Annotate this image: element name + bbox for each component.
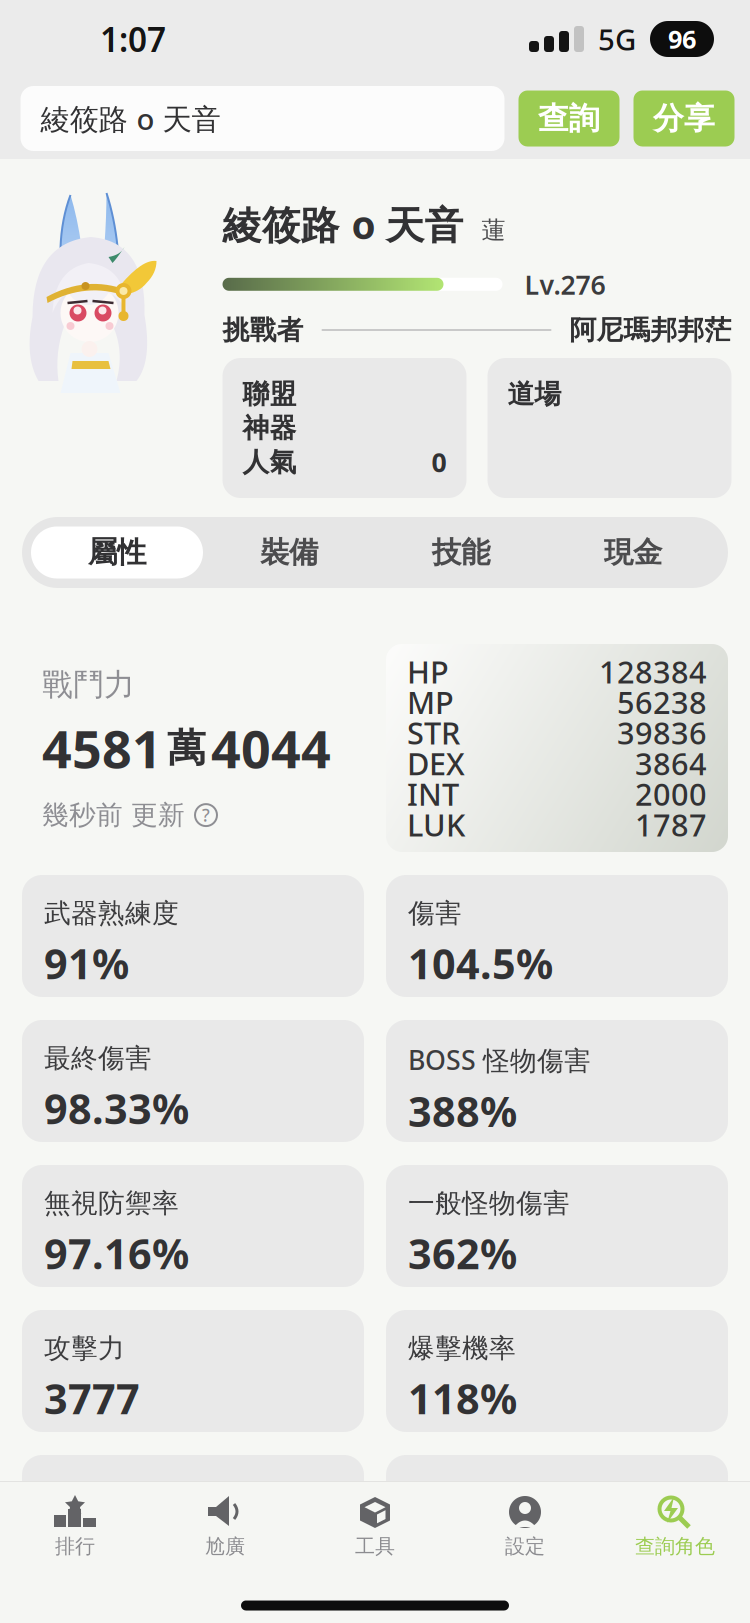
staticText: 裝備 — [260, 534, 318, 570]
staticText: 綾筱路 o 天音 — [222, 199, 463, 250]
staticText: 4581 — [42, 714, 162, 783]
button[interactable]: 屬性 — [31, 526, 203, 578]
staticText: 39836 — [617, 712, 707, 753]
staticText: 現金 — [604, 534, 662, 570]
button[interactable]: 排行 — [0, 1482, 150, 1588]
staticText: BOSS 怪物傷害 — [408, 1042, 591, 1078]
staticText: 388% — [408, 1084, 517, 1138]
button[interactable]: 綾筱路 o 天音 — [20, 86, 504, 151]
staticText: Lv.276 — [524, 267, 605, 302]
staticText: 挑戰者 — [222, 314, 303, 346]
staticText: 人氣 — [242, 446, 296, 478]
staticText: STR — [407, 712, 460, 753]
staticText: 5G — [598, 19, 636, 58]
staticText: 阿尼瑪邦邦茫 — [569, 314, 731, 346]
staticText: 設定 — [505, 1534, 545, 1559]
button[interactable]: 技能 — [375, 526, 547, 578]
button[interactable]: 現金 — [547, 526, 719, 578]
staticText: 武器熟練度 — [44, 897, 179, 930]
button[interactable]: 工具 — [300, 1482, 450, 1588]
staticText: 128384 — [599, 651, 707, 692]
staticText: INT — [407, 773, 459, 814]
staticText: 綾筱路 o 天音 — [40, 99, 220, 138]
button[interactable]: 設定 — [450, 1482, 600, 1588]
staticText: 道場 — [507, 378, 561, 410]
staticText: 蓮 — [481, 215, 505, 245]
staticText: 查詢角色 — [635, 1534, 715, 1559]
button[interactable]: 分享 — [633, 90, 734, 146]
staticText: 97.16% — [44, 1226, 189, 1281]
staticText: 無視防禦率 — [44, 1187, 179, 1220]
staticText: DEX — [407, 743, 465, 784]
staticText: 104.5% — [408, 936, 553, 991]
staticText: 96 — [668, 22, 696, 56]
staticText: 2000 — [635, 773, 707, 814]
staticText: 尬廣 — [205, 1534, 245, 1559]
staticText: 技能 — [432, 534, 490, 570]
staticText: 傷害 — [408, 897, 462, 930]
staticText: ? — [202, 804, 210, 827]
staticText: 查詢 — [538, 100, 600, 137]
staticText: 1:07 — [100, 17, 166, 61]
staticText: 最終傷害 — [44, 1042, 152, 1075]
staticText: LUK — [407, 804, 465, 845]
staticText: 91% — [44, 936, 129, 991]
staticText: 幾秒前 更新 — [42, 799, 185, 831]
staticText: 神器 — [242, 412, 296, 444]
staticText: 戰鬥力 — [42, 666, 135, 704]
staticText: 362% — [408, 1226, 517, 1281]
staticText: 3864 — [635, 743, 707, 784]
staticText: 聯盟 — [242, 378, 296, 410]
staticText: 0 — [431, 444, 446, 480]
staticText: 1787 — [635, 804, 707, 845]
staticText: 56238 — [617, 682, 707, 722]
staticText: HP — [407, 651, 449, 692]
staticText: 分享 — [653, 100, 715, 137]
staticText: 攻擊力 — [44, 1332, 125, 1365]
staticText: 4044 — [211, 714, 331, 783]
button[interactable]: 查詢角色 — [600, 1482, 750, 1588]
staticText: 118% — [408, 1371, 517, 1426]
button[interactable]: 裝備 — [203, 526, 375, 578]
staticText: 屬性 — [88, 534, 146, 570]
staticText: 工具 — [355, 1534, 395, 1559]
staticText: 萬 — [167, 724, 206, 772]
staticText: 98.33% — [44, 1081, 189, 1136]
staticText: MP — [407, 682, 454, 722]
staticText: 一般怪物傷害 — [408, 1187, 570, 1220]
staticText: 3777 — [44, 1371, 140, 1426]
staticText: 爆擊機率 — [408, 1332, 516, 1365]
button[interactable]: 查詢 — [518, 90, 619, 146]
staticText: 排行 — [55, 1534, 95, 1559]
button[interactable]: 尬廣 — [150, 1482, 300, 1588]
